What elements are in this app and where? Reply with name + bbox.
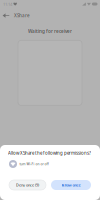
staticText: Allow XShare the following permissions? — [8, 150, 91, 156]
button[interactable]: Deny once (9) — [9, 180, 46, 190]
staticText: Waiting for receiver — [28, 28, 72, 34]
staticText: turn Wi-Fi on or off — [19, 162, 48, 166]
button[interactable]: Allow once — [51, 180, 91, 190]
button[interactable]: Back — [1, 10, 11, 21]
staticText: Allow once — [61, 182, 80, 188]
staticText: 11:14 — [3, 1, 12, 7]
staticText: Deny once (9) — [16, 182, 39, 188]
staticText: XShare — [14, 12, 30, 19]
